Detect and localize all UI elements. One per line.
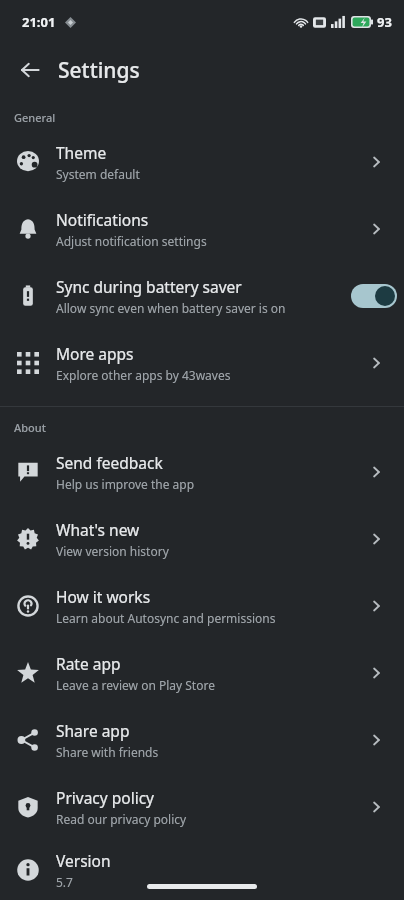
staticText: Sync during battery saver xyxy=(56,276,242,297)
staticText: Privacy policy xyxy=(56,787,154,808)
staticText: System default xyxy=(56,166,140,182)
staticText: Share with friends xyxy=(56,744,159,760)
button[interactable]: Send feedback xyxy=(0,438,404,505)
staticText: Theme xyxy=(56,142,107,163)
button[interactable]: Version xyxy=(0,840,404,900)
staticText: Allow sync even when battery saver is on xyxy=(56,300,286,316)
staticText: Version xyxy=(56,850,111,871)
staticText: Share app xyxy=(56,720,130,741)
button[interactable]: Rate app xyxy=(0,639,404,706)
button[interactable]: Sync during battery saver toggle xyxy=(351,284,397,308)
button[interactable]: Privacy policy xyxy=(0,773,404,840)
staticText: Adjust notification settings xyxy=(56,233,207,249)
button[interactable]: What's new xyxy=(0,505,404,572)
staticText: View version history xyxy=(56,543,169,559)
staticText: Settings xyxy=(58,56,140,85)
staticText: Rate app xyxy=(56,653,121,674)
staticText: Help us improve the app xyxy=(56,476,195,492)
staticText: 93 xyxy=(377,13,392,31)
staticText: General xyxy=(14,110,56,125)
staticText: 21:01 xyxy=(22,13,56,31)
staticText: Notifications xyxy=(56,209,149,230)
button[interactable]: Sync during battery saver xyxy=(0,262,404,329)
staticText: 5.7 xyxy=(56,874,73,890)
button[interactable]: Notifications xyxy=(0,195,404,262)
staticText: Explore other apps by 43waves xyxy=(56,367,231,383)
button[interactable]: Back xyxy=(10,50,50,90)
button[interactable]: How it works xyxy=(0,572,404,639)
button[interactable]: More apps xyxy=(0,329,404,396)
staticText: Read our privacy policy xyxy=(56,811,187,827)
staticText: Learn about Autosync and permissions xyxy=(56,610,276,626)
button[interactable]: Theme xyxy=(0,128,404,195)
button[interactable]: Share app xyxy=(0,706,404,773)
staticText: More apps xyxy=(56,343,134,364)
staticText: Leave a review on Play Store xyxy=(56,677,215,693)
staticText: About xyxy=(14,420,46,435)
staticText: What's new xyxy=(56,519,140,540)
staticText: Send feedback xyxy=(56,452,163,473)
staticText: How it works xyxy=(56,586,151,607)
